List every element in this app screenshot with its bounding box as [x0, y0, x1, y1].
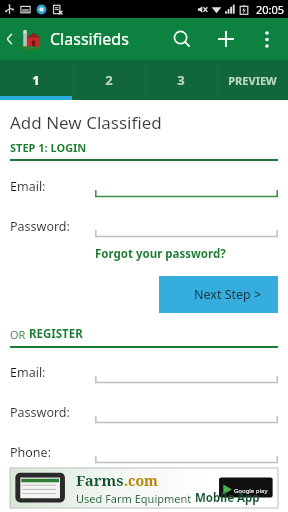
staticText: Email:: [10, 364, 46, 381]
staticText: OR: [10, 327, 29, 342]
staticText: Classifieds: [50, 28, 129, 50]
button[interactable]: More options: [248, 20, 286, 58]
button[interactable]: 1: [0, 60, 72, 100]
button[interactable]: PREVIEW: [217, 60, 288, 100]
button[interactable]: Forgot your password?: [95, 244, 226, 264]
button[interactable]: Advertisement: Farms.com Used Farm Equip…: [10, 468, 278, 508]
staticText: REGISTER: [29, 326, 83, 342]
staticText: 2: [105, 71, 113, 89]
staticText: Farms: [76, 470, 124, 490]
button[interactable]: Add: [204, 18, 248, 60]
staticText: Password:: [10, 404, 70, 421]
staticText: Next Step >: [194, 286, 262, 303]
button[interactable]: [95, 441, 278, 464]
button[interactable]: [95, 401, 278, 424]
button[interactable]: Next Step >: [159, 276, 278, 313]
staticText: 1: [32, 71, 40, 89]
button[interactable]: Search: [160, 18, 204, 60]
button[interactable]: 2: [73, 60, 144, 100]
staticText: Mobile App: [195, 490, 260, 506]
button[interactable]: Navigate up: [0, 20, 45, 58]
staticText: Forgot your password?: [95, 246, 226, 262]
staticText: Phone:: [10, 444, 51, 461]
staticText: .com: [124, 471, 158, 490]
staticText: 20:05: [256, 2, 285, 17]
staticText: PREVIEW: [228, 73, 277, 88]
staticText: STEP 1: LOGIN: [10, 140, 87, 155]
button[interactable]: 3: [145, 60, 216, 100]
staticText: Google play: [234, 487, 268, 495]
staticText: Email:: [10, 178, 46, 195]
button[interactable]: [95, 175, 278, 198]
staticText: Add New Classified: [10, 111, 162, 134]
button[interactable]: [95, 361, 278, 384]
staticText: Password:: [10, 218, 70, 235]
staticText: 3: [177, 71, 185, 89]
staticText: Used Farm Equipment: [76, 491, 195, 506]
button[interactable]: [95, 215, 278, 238]
